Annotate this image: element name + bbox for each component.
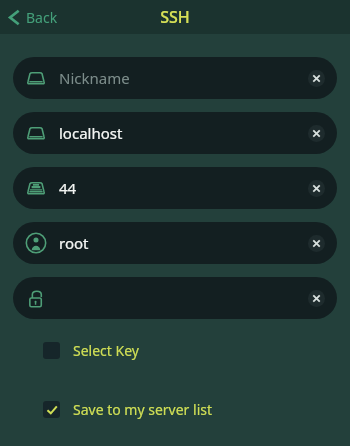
button[interactable]: localhost: [13, 112, 337, 154]
staticText: Save to my server list: [73, 400, 213, 419]
button[interactable]: Nickname: [13, 57, 337, 99]
staticText: SSH: [160, 6, 190, 28]
staticText: Back: [26, 8, 58, 27]
button[interactable]: Clear: [13, 277, 337, 319]
button[interactable]: Clear: [299, 171, 333, 205]
button[interactable]: Back: [0, 4, 68, 31]
button[interactable]: Clear: [299, 281, 333, 315]
button[interactable]: Clear: [299, 116, 333, 150]
button[interactable]: Clear: [299, 61, 333, 95]
button[interactable]: Save to my server list: [43, 396, 225, 423]
button[interactable]: Clear: [299, 226, 333, 260]
staticText: Nickname: [59, 68, 130, 88]
button[interactable]: 44: [13, 167, 337, 209]
button[interactable]: Select Key: [43, 337, 151, 364]
staticText: localhost: [59, 123, 123, 143]
staticText: root: [59, 233, 89, 253]
staticText: 44: [59, 178, 77, 198]
staticText: Select Key: [73, 341, 139, 360]
button[interactable]: root: [13, 222, 337, 264]
